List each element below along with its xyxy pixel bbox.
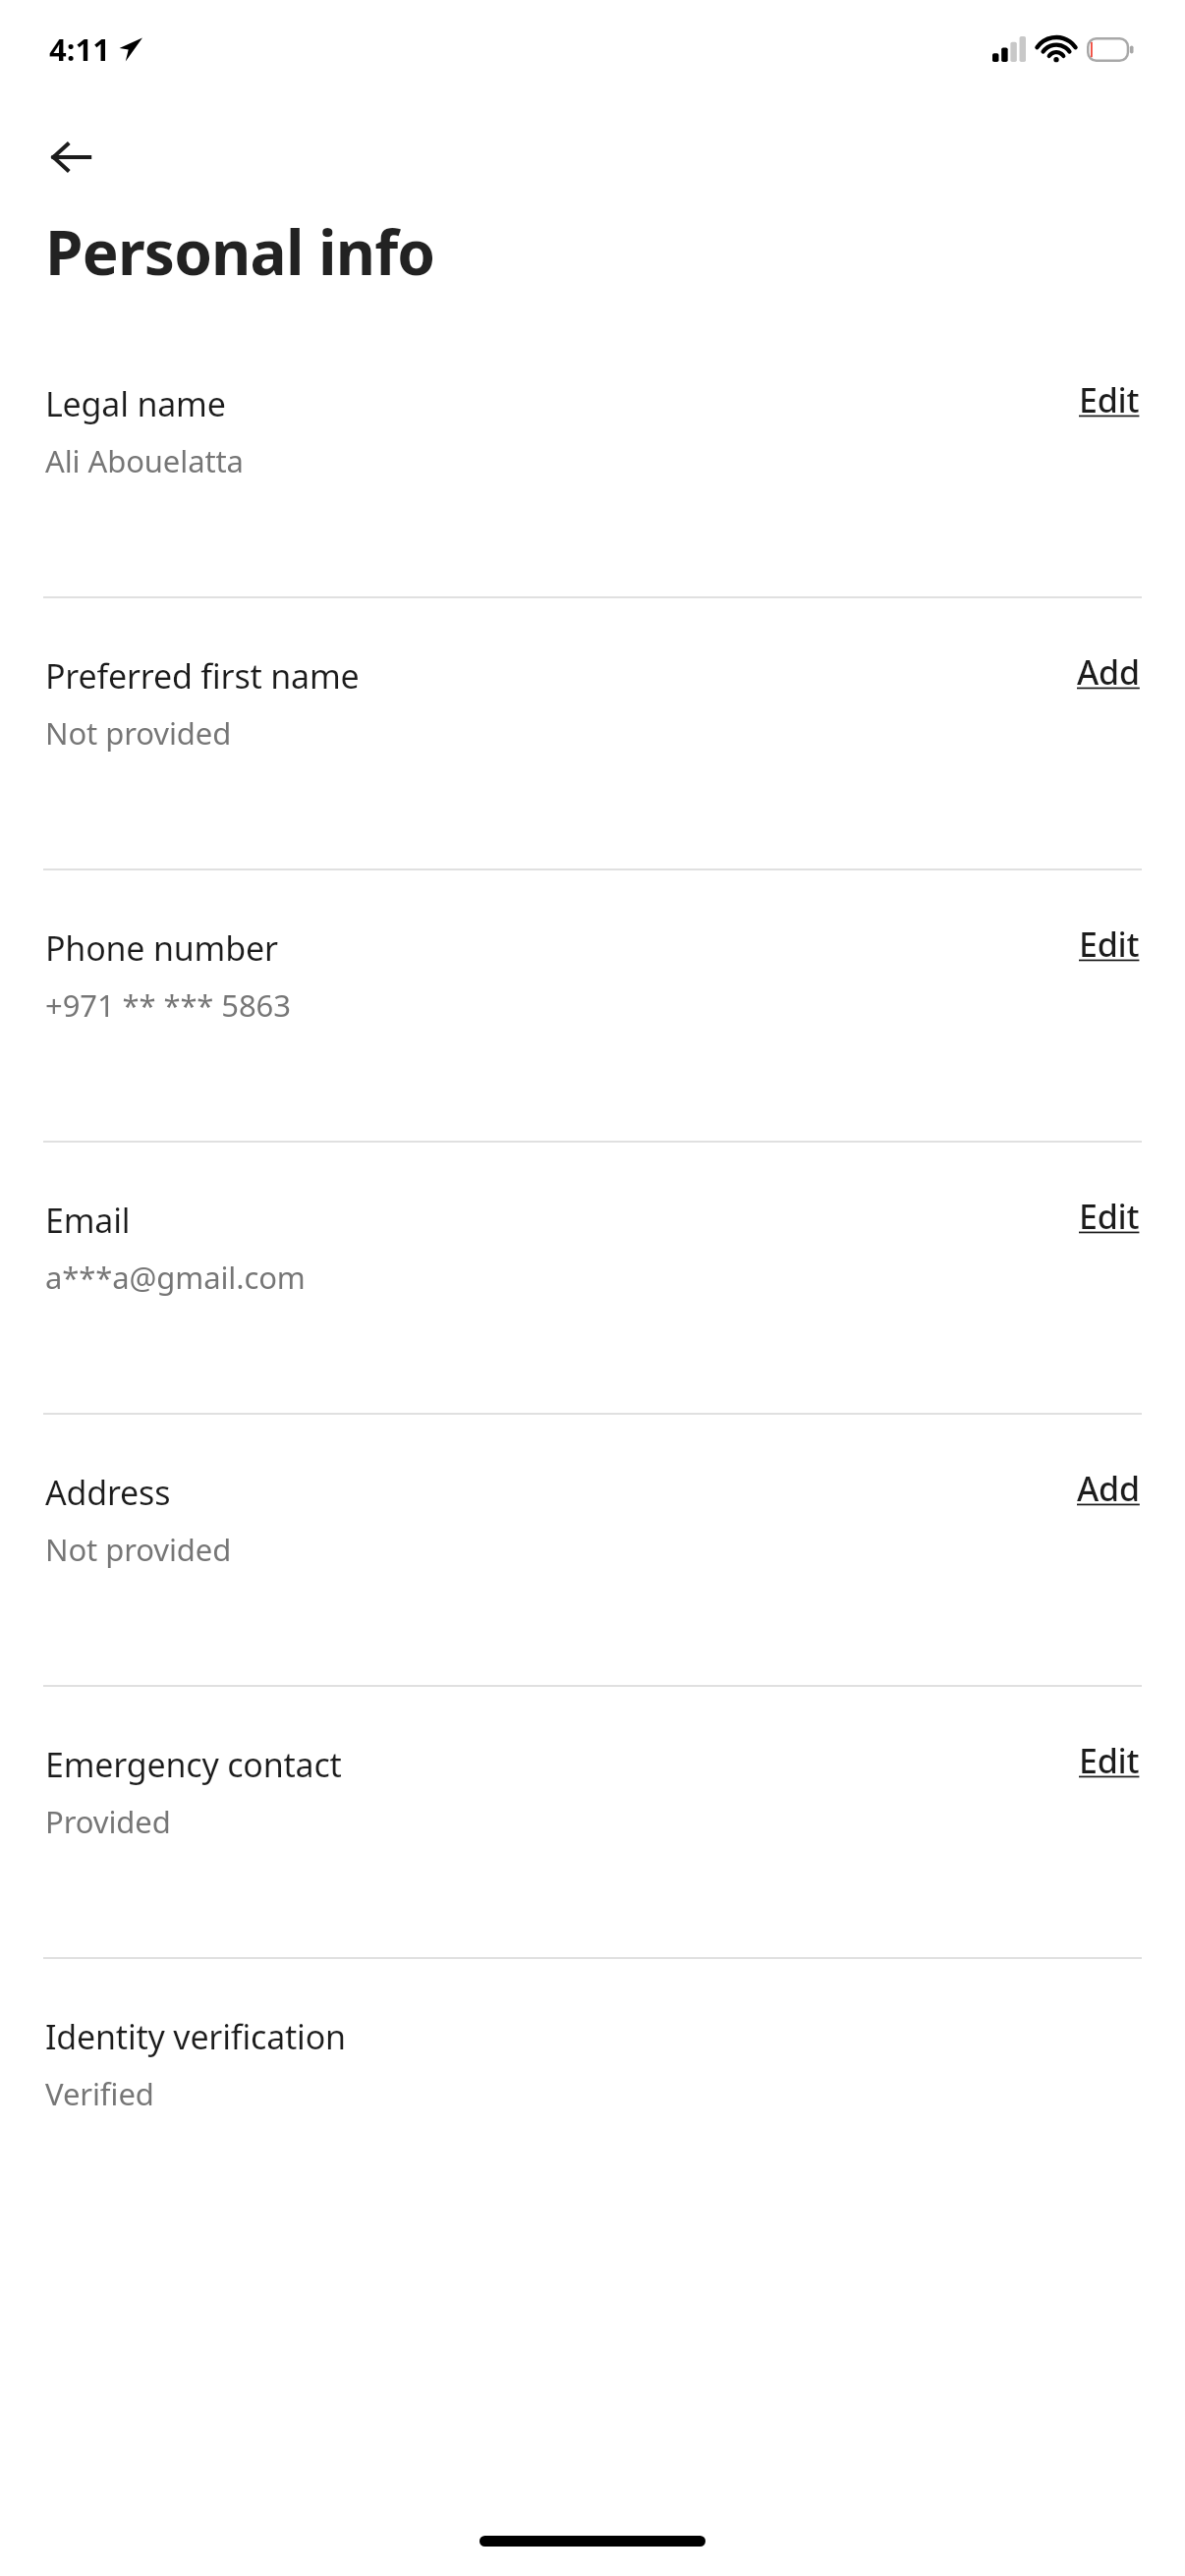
staticText: Verified <box>45 2073 154 2114</box>
button[interactable]: Phone number <box>0 870 1185 1141</box>
staticText: Identity verification <box>45 2014 346 2059</box>
button[interactable]: Preferred first name <box>0 598 1185 868</box>
button[interactable]: Email <box>0 1143 1185 1413</box>
staticText: Ali Abouelatta <box>45 440 244 481</box>
staticText: Emergency contact <box>45 1742 342 1787</box>
staticText: Edit <box>1079 922 1140 967</box>
button[interactable]: Edit <box>1079 377 1140 422</box>
button[interactable]: Address <box>0 1415 1185 1685</box>
staticText: Not provided <box>45 712 232 754</box>
staticText: Not provided <box>45 1529 232 1570</box>
staticText: Preferred first name <box>45 653 360 699</box>
staticText: Edit <box>1079 1738 1140 1783</box>
staticText: 4:11 <box>49 28 110 70</box>
staticText: Address <box>45 1470 171 1515</box>
staticText: a***a@gmail.com <box>45 1257 306 1298</box>
staticText: Edit <box>1079 1194 1140 1239</box>
button[interactable]: Identity verification <box>0 1959 1185 2229</box>
button[interactable]: Edit <box>1079 1738 1140 1783</box>
staticText: +971 ** *** 5863 <box>45 984 291 1026</box>
staticText: Email <box>45 1198 131 1243</box>
staticText: Add <box>1077 1466 1140 1511</box>
button[interactable]: Emergency contact <box>0 1687 1185 1957</box>
staticText: Edit <box>1079 377 1140 422</box>
button[interactable]: Legal name <box>0 326 1185 596</box>
button[interactable]: Edit <box>1079 1194 1140 1239</box>
button[interactable]: Add <box>1077 1466 1140 1511</box>
staticText: Phone number <box>45 925 278 971</box>
staticText: Add <box>1077 649 1140 695</box>
button[interactable]: Edit <box>1079 922 1140 967</box>
staticText: Legal name <box>45 381 226 426</box>
button[interactable]: Back <box>39 126 102 189</box>
staticText: Personal info <box>45 210 435 293</box>
staticText: Provided <box>45 1801 171 1842</box>
button[interactable]: Add <box>1077 649 1140 695</box>
